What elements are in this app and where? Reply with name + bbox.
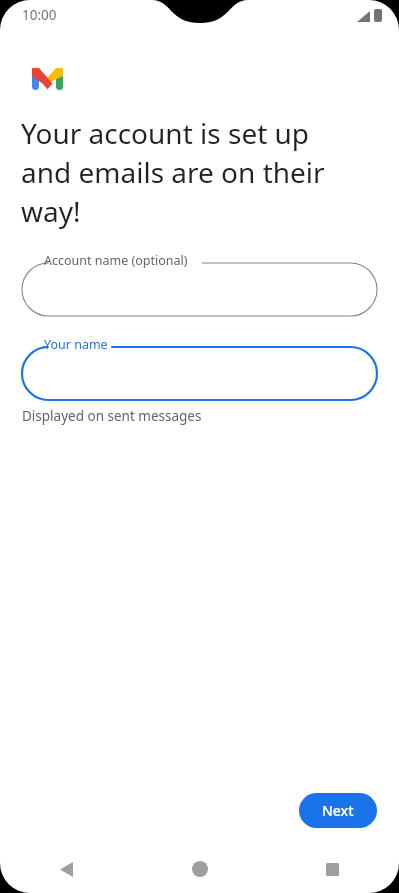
button[interactable]: Next [299,793,377,828]
button[interactable]: Home [133,845,266,893]
staticText: Your account is set up and emails are on… [21,114,361,230]
staticText: 10:00 [22,6,57,24]
button[interactable]: Account name (optional) [22,252,377,316]
staticText: Your name [44,336,108,353]
button[interactable]: Recents [266,845,399,893]
staticText: Account name (optional) [44,252,188,269]
staticText: Displayed on sent messages [22,407,202,425]
staticText: Next [322,801,354,820]
button[interactable]: Your name [22,336,377,400]
button[interactable]: Back [0,845,133,893]
